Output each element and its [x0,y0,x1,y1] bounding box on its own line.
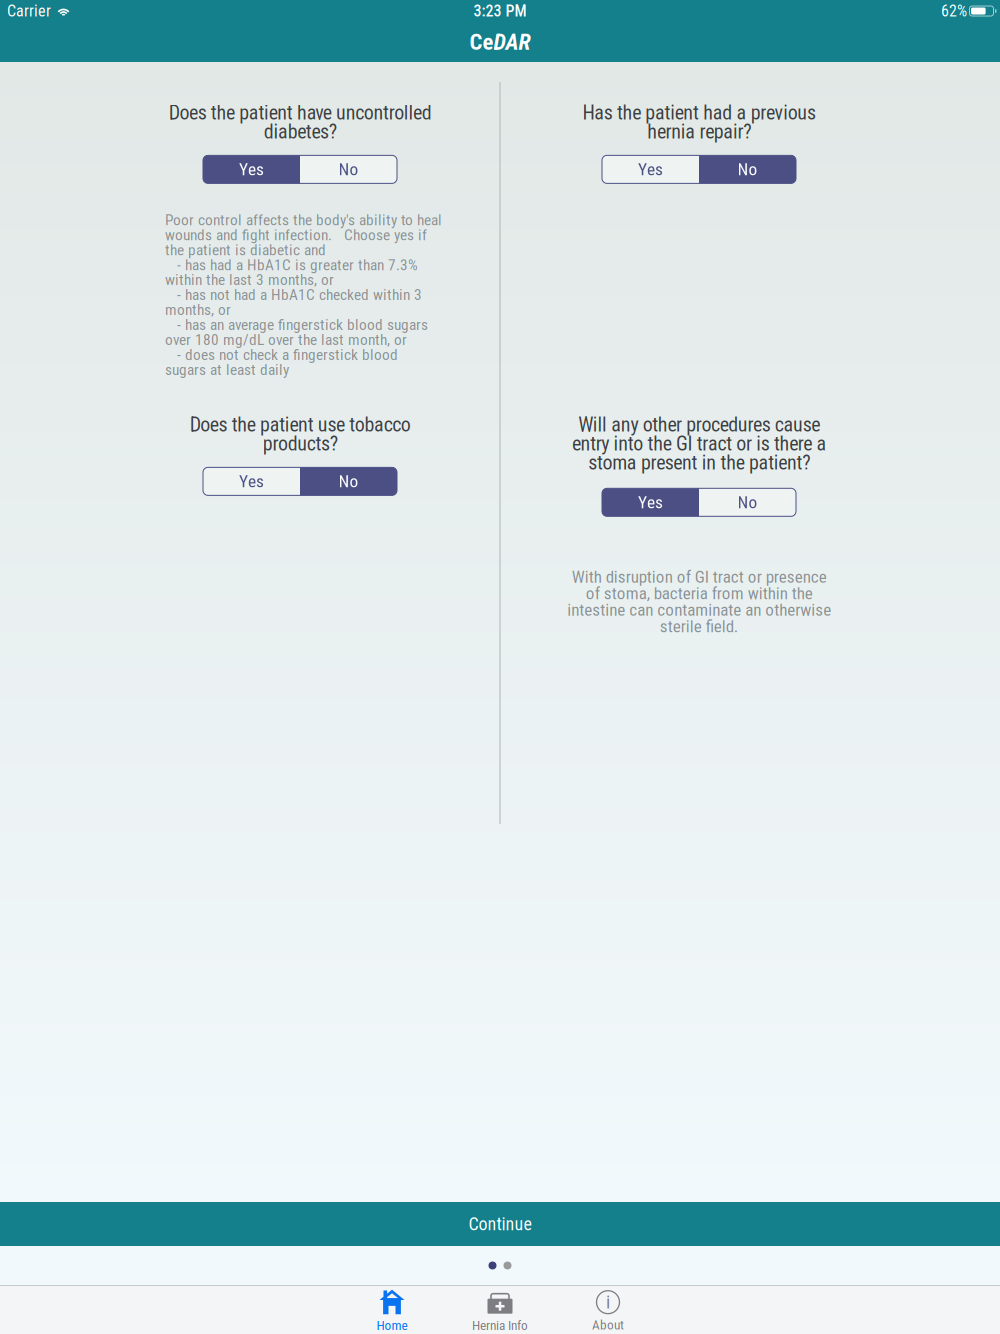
staticText: No [737,492,757,512]
staticText: No [338,159,358,179]
staticText: Poor control affects the body's ability … [165,211,442,379]
button[interactable]: Yes [602,488,699,516]
button[interactable]: No [300,467,397,495]
staticText: Ce [469,29,493,55]
staticText: Does the patient use tobacco products? [189,413,411,455]
staticText: Home [376,1318,407,1333]
staticText: 62% [941,2,967,20]
button[interactable]: Yes [602,155,699,183]
staticText: Yes [638,492,663,512]
staticText: Yes [638,159,663,179]
button[interactable]: No [699,155,796,183]
staticText: DAR [493,29,530,55]
staticText: No [338,471,358,491]
staticText: 3:23 PM [473,2,526,20]
staticText: Carrier [7,2,51,20]
button[interactable]: No [300,155,397,183]
button[interactable]: Continue [0,1202,1000,1246]
staticText: Hernia Info [472,1318,528,1333]
staticText: Will any other procedures cause entry in… [572,413,826,474]
staticText: Yes [239,471,264,491]
staticText: With disruption of GI tract or presence … [567,567,831,636]
button[interactable]: Yes [203,467,300,495]
staticText: About [592,1317,624,1333]
button[interactable]: Yes [203,155,300,183]
button[interactable]: No [699,488,796,516]
staticText: Yes [239,159,264,179]
button[interactable]: i [554,1290,662,1333]
staticText: i [606,1291,610,1313]
button[interactable]: Home [338,1290,446,1333]
staticText: Does the patient have uncontrolled diabe… [169,101,431,143]
staticText: No [737,159,757,179]
button[interactable]: Hernia Info [446,1290,554,1333]
staticText: Has the patient had a previous hernia re… [582,101,816,143]
staticText: Continue [468,1213,531,1235]
